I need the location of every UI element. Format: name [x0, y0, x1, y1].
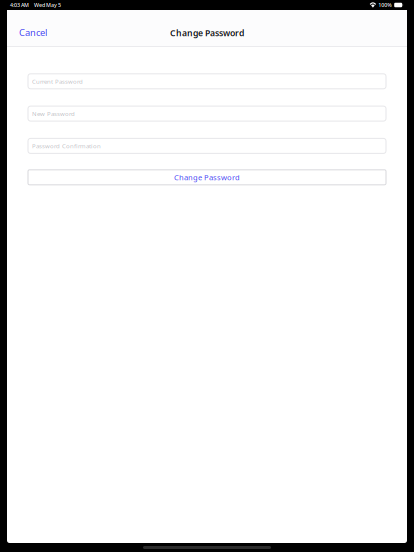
- staticText: 4:03 AM: [10, 1, 29, 9]
- staticText: 100%: [378, 1, 392, 9]
- staticText: Change Password: [174, 172, 240, 182]
- staticText: Change Password: [170, 27, 244, 39]
- button[interactable]: Change Password: [28, 170, 386, 185]
- staticText: Cancel: [19, 26, 47, 39]
- staticText: New Password: [32, 109, 75, 118]
- staticText: Current Password: [32, 77, 83, 85]
- button[interactable]: Password Confirmation: [28, 138, 386, 153]
- button[interactable]: Cancel: [7, 11, 57, 45]
- button[interactable]: Current Password: [28, 74, 386, 89]
- staticText: Wed May 5: [34, 1, 61, 9]
- button[interactable]: New Password: [28, 106, 386, 121]
- staticText: Password Confirmation: [32, 142, 101, 150]
